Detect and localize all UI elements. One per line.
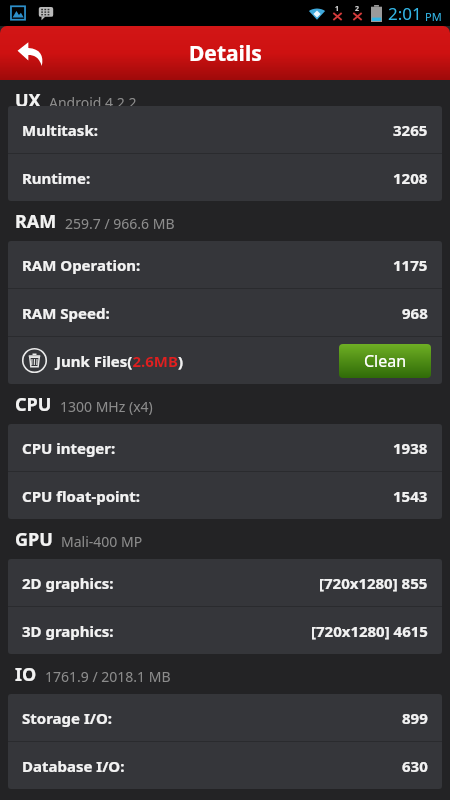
button[interactable]: Storage I/O: — [8, 694, 442, 741]
staticText: 1543 — [393, 486, 428, 506]
button[interactable]: CPU integer: — [8, 424, 442, 471]
staticText: RAM — [15, 209, 57, 234]
staticText: RAM Operation: — [22, 255, 141, 275]
staticText: CPU — [15, 392, 52, 417]
staticText: CPU float-point: — [22, 486, 141, 506]
button[interactable]: Database I/O: — [8, 742, 442, 789]
staticText: Details — [189, 39, 262, 68]
button[interactable]: Back — [6, 29, 54, 77]
button[interactable]: CPU float-point: — [8, 472, 442, 519]
button[interactable]: Clean — [339, 344, 431, 378]
staticText: CPU integer: — [22, 438, 116, 458]
staticText: Junk Files(2.6MB) — [56, 351, 184, 371]
button[interactable]: 2D graphics: — [8, 559, 442, 606]
staticText: [720x1280] 855 — [319, 573, 428, 593]
button[interactable]: RAM Speed: — [8, 289, 442, 336]
staticText: 2:01 — [388, 2, 422, 25]
staticText: Database I/O: — [22, 756, 125, 776]
staticText: 2D graphics: — [22, 573, 114, 593]
staticText: PM — [425, 9, 442, 24]
staticText: 259.7 / 966.6 MB — [65, 214, 175, 233]
staticText: 2 — [355, 4, 360, 14]
staticText: 1208 — [393, 168, 428, 188]
button[interactable]: Runtime: — [8, 154, 442, 201]
staticText: 1300 MHz (x4) — [60, 397, 153, 416]
staticText: Multitask: — [22, 120, 98, 140]
staticText: 899 — [402, 708, 428, 728]
button[interactable]: 3D graphics: — [8, 607, 442, 654]
button[interactable]: Junk Files(2.6MB) — [8, 337, 442, 384]
staticText: Runtime: — [22, 168, 91, 188]
button[interactable]: Multitask: — [8, 106, 442, 153]
staticText: IO — [15, 662, 37, 687]
staticText: [720x1280] 4615 — [311, 621, 428, 641]
staticText: 1761.9 / 2018.1 MB — [45, 667, 171, 686]
staticText: 3D graphics: — [22, 621, 114, 641]
staticText: Storage I/O: — [22, 708, 113, 728]
staticText: 1175 — [393, 255, 428, 275]
staticText: 968 — [402, 303, 428, 323]
staticText: RAM Speed: — [22, 303, 110, 323]
staticText: Clean — [364, 350, 407, 372]
staticText: UX — [15, 88, 41, 113]
staticText: 630 — [402, 756, 428, 776]
staticText: 1 — [335, 4, 340, 14]
staticText: Mali-400 MP — [61, 532, 143, 551]
staticText: GPU — [15, 527, 53, 552]
staticText: 1938 — [393, 438, 428, 458]
staticText: 3265 — [393, 120, 428, 140]
button[interactable]: RAM Operation: — [8, 241, 442, 288]
staticText: Android 4.2.2 — [49, 93, 137, 112]
